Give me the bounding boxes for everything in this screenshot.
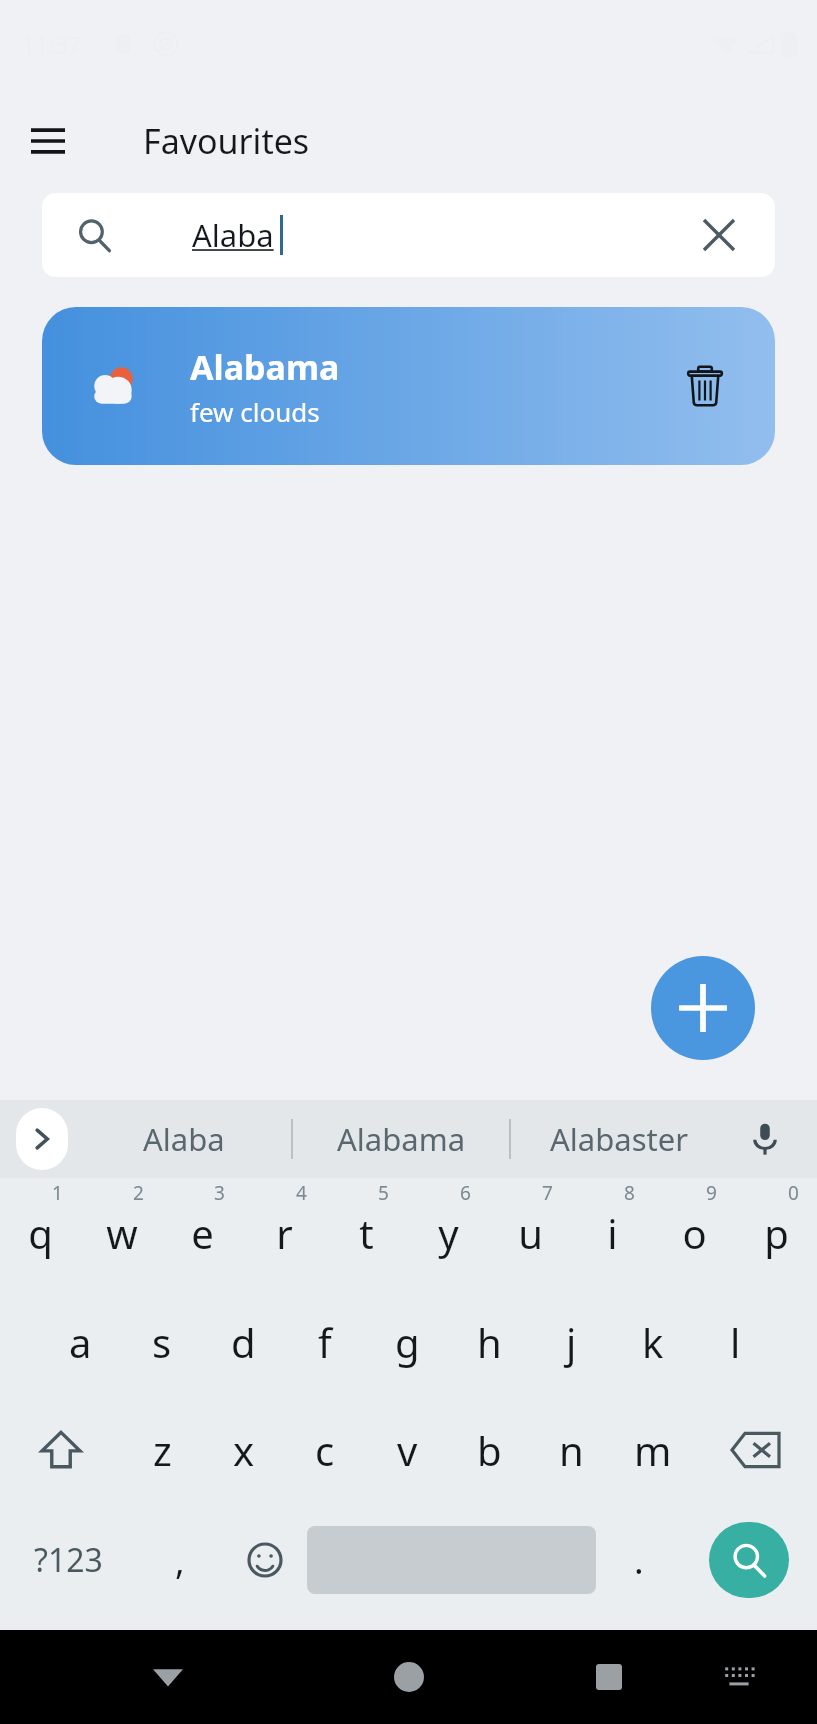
staticText: l bbox=[730, 1315, 741, 1369]
staticText: h bbox=[477, 1315, 502, 1369]
button[interactable]: r bbox=[243, 1178, 325, 1288]
staticText: 8 bbox=[624, 1180, 635, 1206]
staticText: j bbox=[566, 1315, 577, 1369]
button[interactable]: More suggestions bbox=[16, 1108, 68, 1170]
button[interactable]: Back bbox=[140, 1649, 196, 1705]
button[interactable]: e bbox=[162, 1178, 243, 1288]
button[interactable]: Delete bbox=[677, 358, 733, 414]
staticText: a bbox=[69, 1315, 92, 1369]
staticText: Alabama bbox=[190, 344, 340, 390]
button[interactable]: h bbox=[448, 1288, 530, 1396]
staticText: m bbox=[634, 1423, 672, 1477]
button[interactable]: f bbox=[284, 1288, 366, 1396]
button[interactable]: Backspace bbox=[694, 1396, 817, 1504]
staticText: c bbox=[315, 1423, 335, 1477]
staticText: o bbox=[682, 1206, 707, 1260]
button[interactable]: Clear bbox=[693, 209, 745, 261]
button[interactable]: y bbox=[407, 1178, 489, 1288]
staticText: i bbox=[607, 1206, 618, 1260]
button[interactable]: k bbox=[612, 1288, 694, 1396]
button[interactable]: . bbox=[596, 1504, 681, 1616]
button[interactable]: p bbox=[735, 1178, 817, 1288]
button[interactable]: s bbox=[121, 1288, 202, 1396]
button[interactable]: z bbox=[122, 1396, 203, 1504]
staticText: n bbox=[559, 1423, 584, 1477]
button[interactable]: Alabama bbox=[293, 1100, 509, 1178]
button[interactable]: m bbox=[612, 1396, 694, 1504]
staticText: 3 bbox=[214, 1180, 225, 1206]
staticText: Alaba bbox=[143, 1118, 225, 1160]
button[interactable]: Alaba bbox=[76, 1100, 291, 1178]
button[interactable]: Emoji bbox=[222, 1504, 307, 1616]
staticText: g bbox=[395, 1315, 420, 1369]
staticText: 0 bbox=[788, 1180, 799, 1206]
button[interactable]: Home bbox=[381, 1649, 437, 1705]
button[interactable]: Search bbox=[709, 1522, 789, 1598]
button[interactable]: w bbox=[81, 1178, 162, 1288]
staticText: b bbox=[477, 1423, 502, 1477]
button[interactable]: j bbox=[530, 1288, 612, 1396]
button[interactable]: t bbox=[325, 1178, 407, 1288]
staticText: e bbox=[191, 1206, 214, 1260]
button[interactable]: v bbox=[366, 1396, 448, 1504]
staticText: k bbox=[642, 1315, 664, 1369]
button[interactable]: Alaba bbox=[42, 193, 775, 277]
staticText: few clouds bbox=[190, 394, 320, 429]
staticText: v bbox=[397, 1423, 418, 1477]
staticText: 9 bbox=[706, 1180, 717, 1206]
staticText: s bbox=[152, 1315, 172, 1369]
staticText: u bbox=[518, 1206, 543, 1260]
button[interactable]: i bbox=[571, 1178, 653, 1288]
staticText: x bbox=[233, 1423, 255, 1477]
staticText: Alaba bbox=[192, 214, 274, 256]
staticText: f bbox=[318, 1315, 332, 1369]
button[interactable]: l bbox=[694, 1288, 776, 1396]
button[interactable]: Shift bbox=[0, 1396, 122, 1504]
staticText: r bbox=[276, 1206, 293, 1260]
staticText: d bbox=[231, 1315, 256, 1369]
staticText: q bbox=[28, 1206, 53, 1260]
staticText: 6 bbox=[460, 1180, 471, 1206]
button[interactable]: q bbox=[0, 1178, 81, 1288]
button[interactable]: Alabama bbox=[42, 307, 775, 465]
staticText: 2 bbox=[133, 1180, 144, 1206]
button[interactable]: o bbox=[653, 1178, 735, 1288]
button[interactable]: Add city bbox=[651, 956, 755, 1060]
button[interactable]: u bbox=[489, 1178, 571, 1288]
staticText: Favourites bbox=[143, 118, 310, 164]
staticText: 4 bbox=[296, 1180, 307, 1206]
button[interactable]: Recents bbox=[581, 1649, 637, 1705]
button[interactable]: Voice input bbox=[737, 1111, 793, 1167]
button[interactable]: ?123 bbox=[0, 1504, 137, 1616]
staticText: 7 bbox=[542, 1180, 553, 1206]
button[interactable]: , bbox=[137, 1504, 222, 1616]
button[interactable]: d bbox=[202, 1288, 284, 1396]
button[interactable]: n bbox=[530, 1396, 612, 1504]
staticText: t bbox=[359, 1206, 374, 1260]
button[interactable]: g bbox=[366, 1288, 448, 1396]
button[interactable]: Menu bbox=[20, 113, 76, 169]
button[interactable]: c bbox=[284, 1396, 366, 1504]
staticText: 1 bbox=[52, 1180, 63, 1206]
staticText: Alabaster bbox=[550, 1118, 688, 1160]
staticText: z bbox=[153, 1423, 172, 1477]
staticText: w bbox=[106, 1206, 138, 1260]
staticText: . bbox=[634, 1536, 644, 1585]
button[interactable]: a bbox=[40, 1288, 121, 1396]
button[interactable]: b bbox=[448, 1396, 530, 1504]
staticText: ?123 bbox=[34, 1538, 103, 1582]
staticText: Alabama bbox=[337, 1118, 466, 1160]
button[interactable]: Switch keyboard bbox=[711, 1649, 767, 1705]
staticText: y bbox=[438, 1206, 459, 1260]
button[interactable]: x bbox=[203, 1396, 284, 1504]
staticText: , bbox=[175, 1536, 185, 1585]
staticText: 5 bbox=[378, 1180, 389, 1206]
button[interactable]: Alabaster bbox=[511, 1100, 727, 1178]
staticText: p bbox=[764, 1206, 789, 1260]
